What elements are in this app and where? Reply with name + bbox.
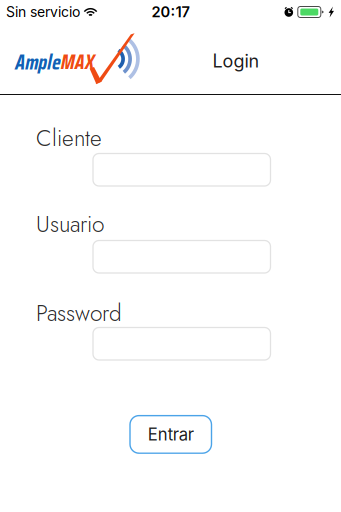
staticText: Sin servicio <box>6 3 80 20</box>
button[interactable]: Entrar <box>130 416 211 453</box>
staticText: 20:17 <box>151 3 189 21</box>
staticText: Password <box>36 297 122 329</box>
staticText: Login <box>212 50 259 72</box>
staticText: Cliente <box>36 122 102 154</box>
staticText: Entrar <box>148 424 194 444</box>
staticText: MAX <box>61 45 95 79</box>
staticText: Ample <box>15 45 60 79</box>
staticText: Usuario <box>36 208 104 240</box>
